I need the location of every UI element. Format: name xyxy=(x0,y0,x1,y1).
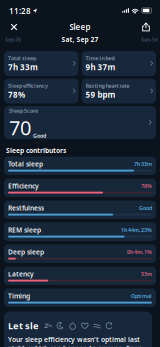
staticText: Efficiency xyxy=(8,181,39,190)
staticText: 78% xyxy=(8,89,25,100)
button[interactable]: Sleep efficiency xyxy=(4,78,78,103)
staticText: Total sleep xyxy=(8,159,43,168)
staticText: Sleep Score xyxy=(9,107,38,114)
button[interactable]: Sep 26 xyxy=(5,35,47,44)
staticText: Sat, Sep 27 xyxy=(61,35,98,44)
button[interactable]: Efficiency xyxy=(4,178,156,197)
button[interactable]: Restfulness xyxy=(4,200,156,219)
button[interactable]: Share xyxy=(136,20,156,34)
staticText: Optimal xyxy=(131,292,152,299)
staticText: Timing xyxy=(8,291,30,300)
staticText: Deep sleep xyxy=(8,247,44,256)
staticText: 1h 44m, 23% xyxy=(121,226,152,233)
staticText: 70 xyxy=(9,114,31,141)
staticText: Total sleep xyxy=(8,55,36,62)
button[interactable]: Total sleep xyxy=(4,51,78,76)
staticText: 53m xyxy=(141,270,152,277)
button[interactable]: Resting heart rate xyxy=(81,78,156,103)
staticText: 0h 4m, 1% xyxy=(127,248,152,255)
button[interactable]: Close xyxy=(4,20,24,34)
staticText: REM sleep xyxy=(8,225,41,234)
staticText: Good xyxy=(33,132,46,139)
staticText: 11:28 xyxy=(9,5,31,16)
staticText: Sleep xyxy=(69,22,90,32)
staticText: Sun, Se xyxy=(141,36,158,43)
button[interactable]: Sleep Score xyxy=(4,106,156,139)
staticText: Sep 26 xyxy=(5,36,21,43)
staticText: Your sleep efficiency wasn't optimal las… xyxy=(8,335,148,347)
button[interactable]: Time in bed xyxy=(81,51,156,76)
staticText: Latency xyxy=(8,269,34,278)
staticText: 7h 33m xyxy=(8,62,38,72)
staticText: Let sle xyxy=(8,319,39,332)
staticText: Sleep efficiency xyxy=(8,82,48,89)
staticText: Sleep contributors xyxy=(6,146,66,155)
staticText: 9h 37m xyxy=(85,62,115,72)
staticText: Time in bed xyxy=(85,55,114,62)
staticText: Good xyxy=(139,204,152,211)
button[interactable]: Latency xyxy=(4,266,156,285)
button[interactable]: Sun, Se xyxy=(120,35,158,44)
button[interactable]: REM sleep xyxy=(4,222,156,241)
staticText: 78% xyxy=(141,182,152,189)
staticText: Resting heart rate xyxy=(85,82,129,89)
staticText: 59 bpm xyxy=(85,89,115,100)
button[interactable]: Timing xyxy=(4,288,156,307)
button[interactable]: Let sle xyxy=(4,311,152,347)
button[interactable]: Total sleep xyxy=(4,156,156,175)
staticText: Restfulness xyxy=(8,203,44,212)
staticText: 7h 33m xyxy=(134,160,152,167)
button[interactable]: Deep sleep xyxy=(4,244,156,263)
